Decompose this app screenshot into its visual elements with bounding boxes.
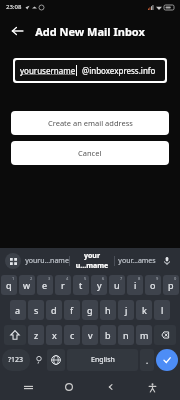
staticText: i	[134, 279, 137, 291]
button[interactable]: i	[127, 275, 143, 295]
button[interactable]: Shift	[4, 325, 26, 345]
staticText: 7	[120, 276, 123, 281]
button[interactable]: a	[10, 300, 26, 320]
button[interactable]: p	[163, 275, 179, 295]
staticText: h	[105, 304, 111, 316]
staticText: 4	[66, 276, 69, 281]
button[interactable]: Create an email address	[11, 111, 169, 135]
staticText: 8	[138, 276, 141, 281]
staticText: Add New Mail Inbox	[35, 24, 145, 39]
staticText: 3	[48, 276, 51, 281]
staticText: 6	[102, 276, 105, 281]
staticText: m	[140, 329, 149, 341]
staticText: yourusername	[20, 65, 76, 76]
button[interactable]: h	[100, 300, 116, 320]
button[interactable]: youru...name	[25, 248, 69, 274]
button[interactable]: Cancel	[11, 141, 169, 165]
button[interactable]: w	[19, 275, 35, 295]
staticText: Cancel	[78, 148, 102, 158]
button[interactable]: e	[37, 275, 53, 295]
button[interactable]: c	[64, 325, 80, 345]
button[interactable]: Backspace	[154, 325, 176, 345]
button[interactable]: Accessibility	[139, 374, 165, 400]
staticText: w	[23, 279, 31, 291]
button[interactable]: o	[145, 275, 161, 295]
staticText: 5	[84, 276, 87, 281]
button[interactable]: x	[46, 325, 62, 345]
button[interactable]: yourusername	[15, 60, 165, 81]
button[interactable]: Back	[6, 20, 28, 42]
button[interactable]: l	[154, 300, 170, 320]
staticText: 2	[30, 276, 33, 281]
button[interactable]: English	[67, 349, 138, 371]
button[interactable]: Back	[98, 374, 124, 400]
button[interactable]: your u...mame	[70, 248, 114, 274]
staticText: b	[105, 329, 111, 341]
button[interactable]: Menu	[5, 253, 21, 269]
staticText: k	[142, 304, 147, 316]
button[interactable]: Home	[56, 374, 82, 400]
staticText: your...ames	[118, 256, 156, 266]
staticText: 1	[12, 276, 15, 281]
staticText: c	[70, 329, 75, 341]
staticText: 9	[156, 276, 159, 281]
button[interactable]: t	[73, 275, 89, 295]
button[interactable]: g	[82, 300, 98, 320]
button[interactable]: u	[109, 275, 125, 295]
staticText: d	[51, 304, 57, 316]
staticText: 23:08	[6, 3, 22, 11]
staticText: f	[70, 304, 74, 316]
button[interactable]: m	[136, 325, 152, 345]
button[interactable]: r	[55, 275, 71, 295]
staticText: e	[42, 279, 48, 291]
staticText: English	[91, 355, 115, 365]
button[interactable]: n	[118, 325, 134, 345]
staticText: @inboxexpress.info	[82, 65, 156, 76]
staticText: s	[34, 304, 39, 316]
staticText: Create an email address	[48, 118, 133, 128]
button[interactable]: b	[100, 325, 116, 345]
button[interactable]: Change language	[47, 349, 65, 371]
staticText: 0	[174, 276, 177, 281]
button[interactable]: f	[64, 300, 80, 320]
staticText: v	[88, 329, 93, 341]
staticText: g	[87, 304, 93, 316]
button[interactable]: y	[91, 275, 107, 295]
button[interactable]: ?123	[2, 349, 30, 371]
staticText: x	[52, 329, 57, 341]
button[interactable]: z	[28, 325, 44, 345]
button[interactable]: j	[118, 300, 134, 320]
staticText: p	[168, 279, 174, 291]
staticText: q	[6, 279, 12, 291]
staticText: ?123	[8, 355, 24, 365]
staticText: z	[34, 329, 39, 341]
staticText: youru...name	[25, 256, 69, 266]
button[interactable]: Recents	[15, 374, 41, 400]
staticText: t	[79, 279, 83, 291]
button[interactable]: Emoji	[32, 349, 46, 371]
staticText: your u...mame	[70, 251, 114, 271]
button[interactable]: Enter	[156, 349, 178, 371]
button[interactable]: your...ames	[115, 248, 159, 274]
staticText: j	[125, 304, 128, 316]
button[interactable]: q	[1, 275, 17, 295]
staticText: .	[146, 355, 149, 366]
staticText: n	[123, 329, 129, 341]
button[interactable]: Voice input	[159, 248, 175, 274]
staticText: o	[150, 279, 156, 291]
staticText: u	[114, 279, 120, 291]
button[interactable]: s	[28, 300, 44, 320]
staticText: l	[161, 304, 164, 316]
staticText: r	[61, 279, 65, 291]
staticText: a	[15, 304, 21, 316]
button[interactable]: d	[46, 300, 62, 320]
button[interactable]: v	[82, 325, 98, 345]
button[interactable]: Period	[140, 349, 154, 371]
button[interactable]: k	[136, 300, 152, 320]
staticText: y	[97, 279, 102, 291]
